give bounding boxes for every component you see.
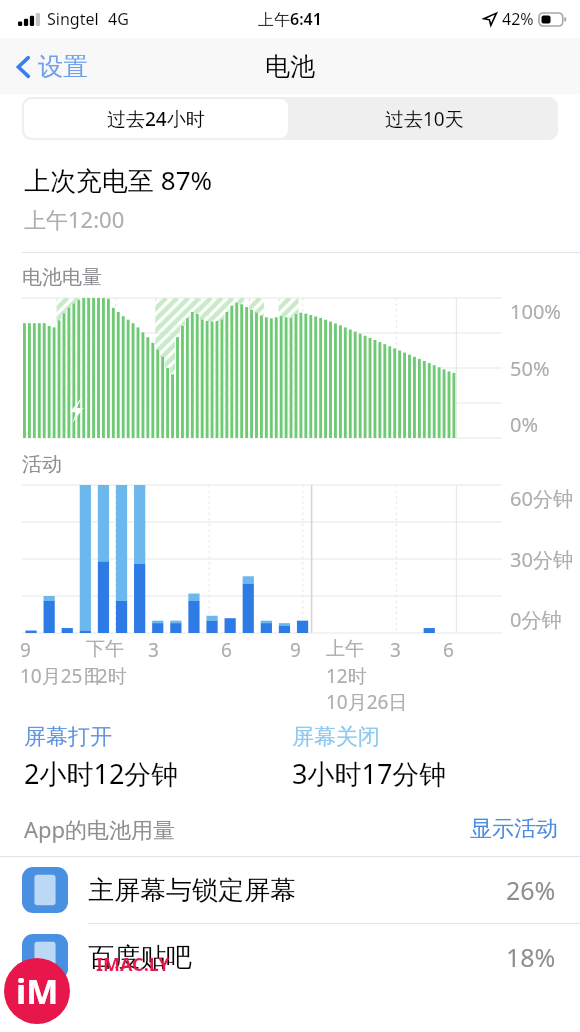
staticText: 10月25日 xyxy=(20,663,102,689)
staticText: 12时 xyxy=(86,663,127,689)
staticText: 过去10天 xyxy=(385,106,464,132)
staticText: Singtel xyxy=(47,8,99,30)
button[interactable]: 显示活动 xyxy=(470,815,558,843)
button[interactable]: 设置 xyxy=(12,45,92,88)
staticText: 6 xyxy=(443,637,454,663)
staticText: 屏幕打开 xyxy=(24,723,112,751)
staticText: iM xyxy=(16,968,59,1014)
staticText: App的电池用量 xyxy=(24,814,176,844)
staticText: 0% xyxy=(510,411,539,438)
staticText: 上午12:00 xyxy=(24,204,125,234)
staticText: 显示活动 xyxy=(470,815,558,843)
staticText: 6 xyxy=(221,637,232,663)
staticText: 上次充电至 87% xyxy=(24,162,213,198)
staticText: 30分钟 xyxy=(510,546,573,573)
staticText: 100% xyxy=(510,298,561,325)
staticText: 42% xyxy=(502,8,534,30)
staticText: 过去24小时 xyxy=(107,106,205,132)
staticText: 上午 xyxy=(326,637,364,661)
staticText: 4G xyxy=(108,8,129,30)
staticText: 3 xyxy=(390,637,401,663)
staticText: 电池 xyxy=(265,51,315,82)
staticText: 9 xyxy=(20,637,31,663)
staticText: 屏幕关闭 xyxy=(292,723,380,751)
staticText: 50% xyxy=(510,355,550,382)
staticText: 下午 xyxy=(86,637,124,661)
button[interactable]: 主屏幕与锁定屏幕 xyxy=(0,857,580,923)
staticText: IMAC.LY xyxy=(96,952,170,977)
staticText: 电池电量 xyxy=(22,265,102,290)
staticText: 上午6:41 xyxy=(258,8,322,30)
staticText: 0分钟 xyxy=(510,606,562,633)
staticText: 3 xyxy=(148,637,159,663)
staticText: 10月26日 xyxy=(326,689,408,715)
staticText: 12时 xyxy=(326,663,367,689)
staticText: 主屏幕与锁定屏幕 xyxy=(88,874,296,907)
staticText: 18% xyxy=(506,940,556,974)
button[interactable]: 百度贴吧 xyxy=(0,924,580,990)
staticText: 9 xyxy=(290,637,301,663)
staticText: 设置 xyxy=(38,51,88,82)
button[interactable]: 过去10天 xyxy=(290,97,558,140)
staticText: 3小时17分钟 xyxy=(292,755,447,792)
staticText: 百度贴吧 xyxy=(88,941,192,974)
staticText: 活动 xyxy=(22,452,62,477)
button[interactable]: 过去24小时 xyxy=(24,99,288,138)
staticText: 2小时12分钟 xyxy=(24,755,179,792)
staticText: 26% xyxy=(506,873,556,907)
staticText: 60分钟 xyxy=(510,485,573,512)
